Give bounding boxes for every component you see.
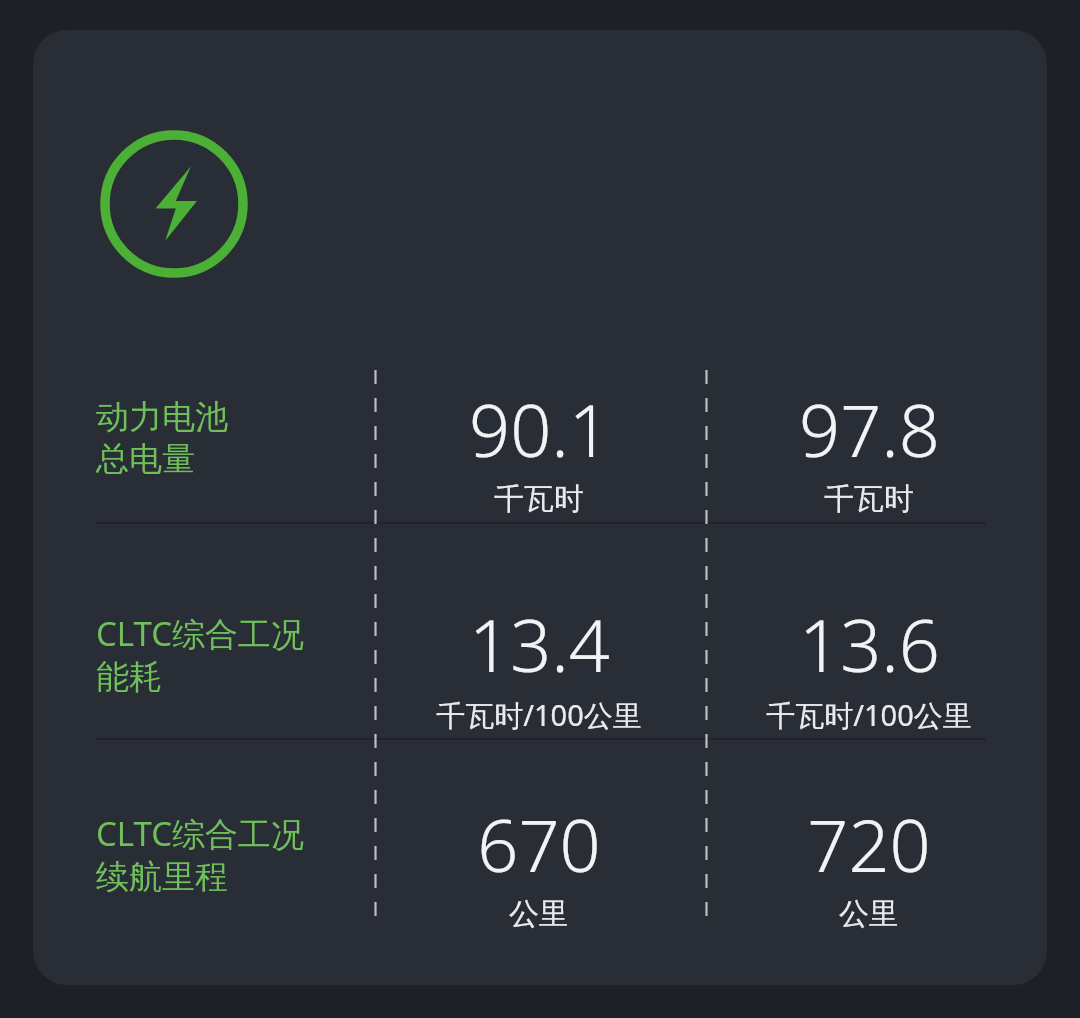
staticText: 动力电池 <box>96 396 228 438</box>
staticText: 千瓦时/100公里 <box>436 695 642 735</box>
staticText: 总电量 <box>96 438 195 480</box>
staticText: 13.6 <box>799 595 940 693</box>
staticText: 续航里程 <box>96 856 228 898</box>
staticText: 公里 <box>839 895 899 933</box>
staticText: CLTC综合工况 <box>96 811 305 856</box>
button[interactable]: Electric power <box>100 130 248 278</box>
button[interactable]: 动力电池 <box>33 380 1047 518</box>
staticText: 90.1 <box>469 380 610 478</box>
staticText: 千瓦时 <box>494 480 584 518</box>
staticText: 670 <box>477 795 601 893</box>
staticText: 720 <box>807 795 931 893</box>
staticText: 97.8 <box>799 380 940 478</box>
staticText: CLTC综合工况 <box>96 611 305 656</box>
staticText: 13.4 <box>469 595 610 693</box>
staticText: 能耗 <box>96 656 162 698</box>
staticText: 公里 <box>509 895 569 933</box>
button[interactable]: Electric power <box>33 30 1047 985</box>
staticText: 千瓦时/100公里 <box>766 695 972 735</box>
staticText: 千瓦时 <box>824 480 914 518</box>
button[interactable]: CLTC综合工况 <box>33 595 1047 735</box>
button[interactable]: CLTC综合工况 <box>33 795 1047 933</box>
